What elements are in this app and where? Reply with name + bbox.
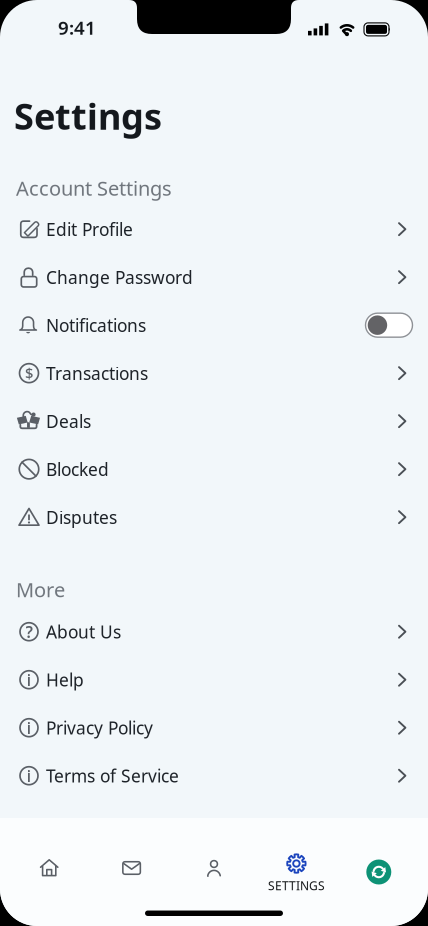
staticText: Privacy Policy: [46, 716, 153, 739]
button[interactable]: $: [0, 349, 428, 397]
button[interactable]: i: [0, 656, 428, 704]
button[interactable]: Home: [8, 843, 90, 865]
button[interactable]: ?: [0, 608, 428, 656]
staticText: Edit Profile: [46, 218, 133, 241]
staticText: Help: [46, 668, 84, 691]
staticText: Account Settings: [16, 175, 172, 201]
staticText: Change Password: [46, 266, 193, 289]
button[interactable]: Edit Profile: [0, 205, 428, 253]
staticText: 9:41: [58, 15, 96, 40]
staticText: Transactions: [46, 362, 148, 385]
staticText: About Us: [46, 620, 121, 643]
button[interactable]: Blocked: [0, 445, 428, 493]
button[interactable]: i: [0, 752, 428, 800]
staticText: i: [26, 765, 31, 786]
button[interactable]: SETTINGS: [255, 833, 338, 874]
staticText: SETTINGS: [268, 877, 325, 893]
button[interactable]: Notifications: [0, 301, 428, 349]
staticText: Notifications: [46, 314, 146, 337]
button[interactable]: Exchange: [338, 841, 420, 866]
button[interactable]: i: [0, 704, 428, 752]
staticText: Settings: [14, 92, 162, 140]
staticText: i: [26, 669, 31, 690]
staticText: i: [26, 717, 31, 738]
staticText: Terms of Service: [46, 764, 179, 787]
button[interactable]: Disputes: [0, 493, 428, 541]
staticText: $: [25, 363, 33, 383]
staticText: More: [16, 576, 65, 603]
staticText: Blocked: [46, 458, 109, 481]
staticText: ?: [25, 621, 32, 642]
button[interactable]: Messages: [90, 843, 173, 865]
button[interactable]: Deals: [0, 397, 428, 445]
staticText: Disputes: [46, 506, 117, 529]
staticText: Deals: [46, 410, 91, 433]
button[interactable]: Profile: [173, 843, 255, 865]
button[interactable]: Change Password: [0, 253, 428, 301]
